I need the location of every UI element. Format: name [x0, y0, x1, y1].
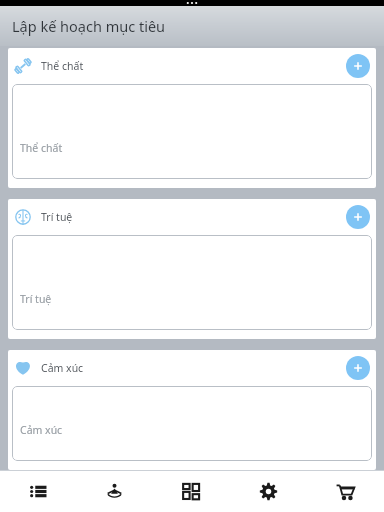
staticText: Trí tuệ — [41, 210, 73, 224]
staticText: Cảm xúc — [20, 423, 63, 437]
staticText: Cảm xúc — [41, 361, 84, 375]
staticText: Trí tuệ — [20, 292, 52, 306]
staticText: Thể chất — [41, 59, 84, 73]
button[interactable]: Danh sách — [0, 471, 76, 512]
button[interactable]: Thêm Cảm xúc — [346, 356, 370, 380]
staticText: Lập kế hoạch mục tiêu — [12, 16, 166, 36]
staticText: Thể chất — [20, 141, 63, 155]
button[interactable]: Thể chất — [12, 84, 372, 179]
button[interactable]: Thiền — [76, 471, 153, 512]
button[interactable]: Cảm xúc — [12, 386, 372, 461]
button[interactable]: Trí tuệ — [12, 235, 372, 330]
button[interactable]: Thêm Trí tuệ — [346, 205, 370, 229]
button[interactable]: Thêm Thể chất — [346, 54, 370, 78]
button[interactable]: Bảng điều khiển — [153, 471, 230, 512]
button[interactable]: Cài đặt — [230, 471, 307, 512]
button[interactable]: Giỏ hàng — [307, 471, 384, 512]
